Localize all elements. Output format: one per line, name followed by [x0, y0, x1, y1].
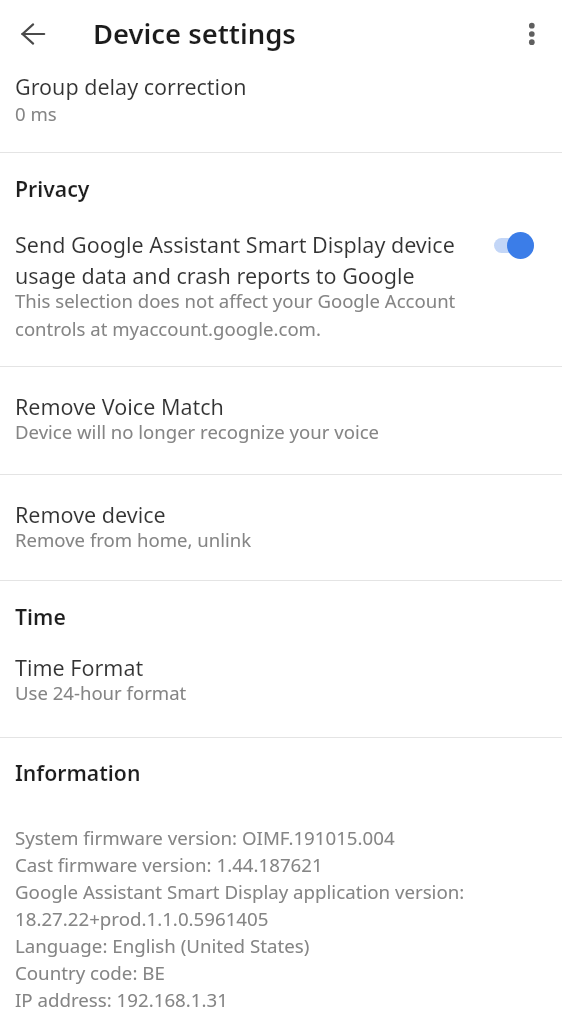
button[interactable]: Send usage data and crash reports to Goo… — [486, 226, 546, 266]
staticText: Remove Voice Match — [15, 392, 224, 421]
button[interactable]: Send Google Assistant Smart Display devi… — [0, 212, 562, 366]
staticText: Privacy — [15, 174, 90, 203]
staticText: Device will no longer recognize your voi… — [15, 419, 380, 444]
button[interactable]: Navigate up — [9, 9, 59, 59]
staticText: Device settings — [93, 15, 296, 52]
staticText: Remove device — [15, 500, 166, 529]
staticText: 0 ms — [15, 101, 57, 126]
button[interactable]: Time Format — [0, 640, 562, 737]
staticText: Time — [15, 602, 66, 631]
button[interactable]: More options — [508, 10, 556, 58]
staticText: Information — [15, 758, 141, 787]
staticText: System firmware version: OIMF.191015.004… — [15, 825, 485, 1013]
staticText: Group delay correction — [15, 72, 247, 101]
staticText: Use 24-hour format — [15, 680, 187, 705]
button[interactable]: Group delay correction — [0, 62, 562, 152]
button[interactable]: Remove Voice Match — [0, 367, 562, 474]
button[interactable]: Remove device — [0, 475, 562, 580]
staticText: Time Format — [15, 653, 144, 682]
staticText: This selection does not affect your Goog… — [15, 288, 477, 341]
staticText: Remove from home, unlink — [15, 527, 252, 552]
staticText: Send Google Assistant Smart Display devi… — [15, 230, 480, 291]
